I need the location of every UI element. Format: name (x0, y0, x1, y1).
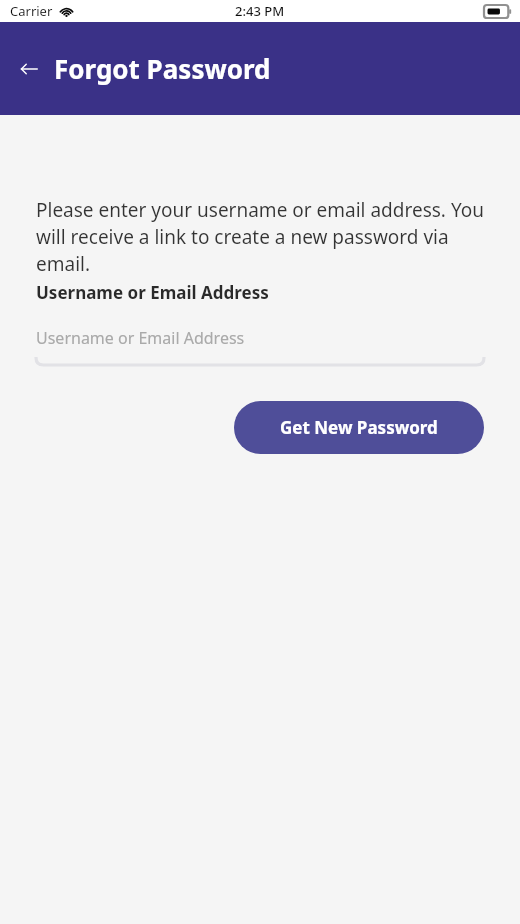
staticText: Username or Email Address (36, 281, 269, 304)
button[interactable]: Username or Email Address (36, 327, 484, 365)
staticText: Forgot Password (54, 51, 271, 86)
staticText: Username or Email Address (36, 327, 245, 349)
staticText: Please enter your username or email addr… (36, 197, 484, 277)
button[interactable]: Back (14, 54, 44, 84)
staticText: 2:43 PM (235, 2, 285, 20)
staticText: Carrier (10, 2, 53, 20)
button[interactable]: Get New Password (234, 401, 484, 454)
staticText: Get New Password (280, 416, 438, 439)
